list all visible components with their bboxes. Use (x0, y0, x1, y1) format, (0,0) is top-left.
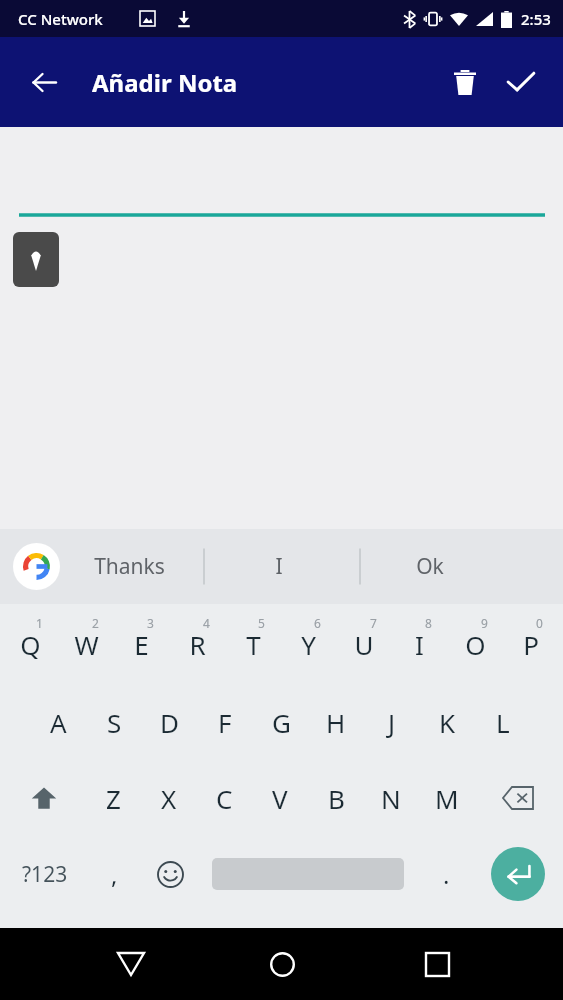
button[interactable]: H (308, 684, 364, 760)
button[interactable]: E (113, 604, 169, 684)
staticText: 6 (314, 615, 321, 631)
button[interactable]: J (364, 684, 420, 760)
button[interactable]: Paste (13, 232, 59, 287)
staticText: E (134, 627, 149, 662)
button[interactable]: R (169, 604, 225, 684)
staticText: W (74, 627, 99, 662)
button[interactable]: I (391, 604, 447, 684)
button[interactable]: C (196, 760, 252, 836)
staticText: 3 (147, 615, 154, 631)
staticText: Thanks (94, 552, 165, 581)
button[interactable]: V (252, 760, 308, 836)
button[interactable]: O (447, 604, 503, 684)
button[interactable]: Backspace (490, 760, 546, 836)
staticText: U (354, 627, 374, 662)
button[interactable]: W (58, 604, 114, 684)
staticText: 1 (36, 615, 43, 631)
staticText: N (381, 781, 401, 816)
staticText: Añadir Nota (92, 66, 238, 99)
button[interactable]: S (86, 684, 142, 760)
staticText: H (326, 705, 346, 740)
button[interactable]: U (336, 604, 392, 684)
button[interactable]: Google (13, 543, 60, 590)
button[interactable]: N (363, 760, 419, 836)
button[interactable]: T (225, 604, 281, 684)
button[interactable]: L (475, 684, 531, 760)
button[interactable]: . (422, 836, 470, 912)
button[interactable]: ?123 (10, 836, 80, 912)
staticText: ?123 (22, 860, 68, 889)
staticText: A (50, 705, 67, 740)
staticText: K (439, 705, 456, 740)
button[interactable]: , (88, 836, 140, 912)
button[interactable]: Q (2, 604, 58, 684)
staticText: , (111, 858, 118, 891)
button[interactable]: G (253, 684, 309, 760)
staticText: . (443, 858, 450, 891)
staticText: 2 (92, 615, 99, 631)
button[interactable]: K (419, 684, 475, 760)
staticText: 8 (425, 615, 432, 631)
staticText: F (218, 705, 232, 740)
button[interactable]: A (30, 684, 86, 760)
staticText: T (246, 627, 261, 662)
staticText: 7 (370, 615, 377, 631)
staticText: Ok (416, 552, 444, 581)
staticText: M (435, 781, 459, 816)
button[interactable]: Delete (441, 58, 489, 106)
button[interactable]: Enter (491, 847, 545, 901)
staticText: G (272, 705, 291, 740)
staticText: 2:53 (521, 9, 551, 29)
staticText: B (328, 781, 345, 816)
staticText: R (189, 627, 206, 662)
button[interactable]: I (217, 529, 341, 604)
staticText: S (107, 705, 122, 740)
button[interactable]: P (503, 604, 559, 684)
staticText: 5 (258, 615, 265, 631)
staticText: CC Network (18, 9, 103, 29)
button[interactable]: M (419, 760, 475, 836)
button[interactable]: Thanks (67, 529, 191, 604)
staticText: L (496, 705, 510, 740)
staticText: J (388, 705, 396, 740)
button[interactable]: Home (252, 934, 312, 994)
button[interactable]: Emoji (144, 836, 196, 912)
button[interactable]: Y (280, 604, 336, 684)
button[interactable]: Back (101, 934, 161, 994)
staticText: C (216, 781, 233, 816)
staticText: Y (301, 627, 316, 662)
button[interactable]: F (197, 684, 253, 760)
staticText: I (415, 627, 424, 662)
button[interactable]: Back (20, 58, 68, 106)
staticText: V (272, 781, 288, 816)
staticText: X (161, 781, 177, 816)
staticText: Q (20, 627, 41, 662)
staticText: Z (106, 781, 121, 816)
staticText: O (465, 627, 486, 662)
staticText: I (275, 552, 283, 581)
button[interactable]: Save (497, 58, 545, 106)
staticText: 9 (481, 615, 488, 631)
staticText: D (160, 705, 179, 740)
button[interactable]: Ok (368, 529, 492, 604)
button[interactable]: Z (85, 760, 141, 836)
button[interactable]: B (308, 760, 364, 836)
button[interactable]: Shift (16, 760, 72, 836)
staticText: P (523, 627, 539, 662)
staticText: 0 (536, 615, 543, 631)
button[interactable]: Recents (407, 934, 467, 994)
staticText: 4 (203, 615, 210, 631)
button[interactable]: X (141, 760, 197, 836)
button[interactable]: D (141, 684, 197, 760)
